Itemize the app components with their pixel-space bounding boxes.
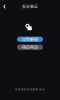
button[interactable]: Back — [0, 2, 9, 11]
staticText: 稍后再说 — [22, 45, 38, 50]
staticText: 立即解锁 — [22, 37, 38, 42]
button[interactable]: 立即解锁 — [17, 37, 43, 42]
staticText: 加密保护您的隐私安全 — [15, 88, 45, 91]
staticText: 安全验证 — [22, 4, 38, 9]
button[interactable]: 稍后再说 — [17, 44, 43, 50]
